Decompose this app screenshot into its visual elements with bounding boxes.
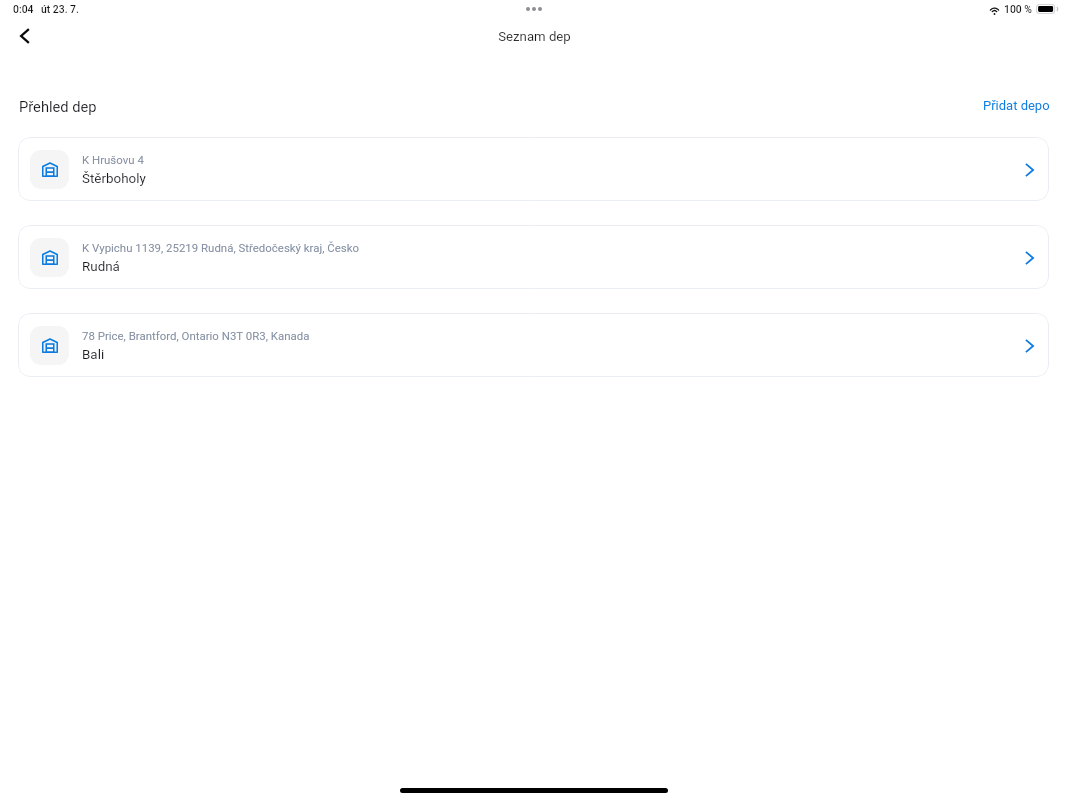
staticText: 100 % bbox=[1004, 3, 1032, 15]
button[interactable]: K Hrušovu 4 bbox=[18, 137, 1049, 201]
staticText: Rudná bbox=[82, 259, 120, 275]
staticText: Přehled dep bbox=[19, 98, 97, 115]
staticText: Přidat depo bbox=[983, 98, 1050, 113]
staticText: Seznam dep bbox=[498, 29, 571, 44]
button[interactable]: Přidat depo bbox=[975, 90, 1058, 121]
staticText: Štěrboholy bbox=[82, 171, 146, 187]
button[interactable]: Back bbox=[6, 21, 44, 50]
staticText: út 23. 7. bbox=[41, 3, 79, 15]
button[interactable]: K Vypichu 1139, 25219 Rudná, Středočeský… bbox=[18, 225, 1049, 289]
staticText: K Vypichu 1139, 25219 Rudná, Středočeský… bbox=[82, 241, 360, 254]
staticText: K Hrušovu 4 bbox=[82, 153, 144, 166]
staticText: 0:04 bbox=[13, 3, 34, 15]
staticText: 78 Price, Brantford, Ontario N3T 0R3, Ka… bbox=[82, 329, 310, 342]
staticText: Bali bbox=[82, 347, 105, 363]
button[interactable]: 78 Price, Brantford, Ontario N3T 0R3, Ka… bbox=[18, 313, 1049, 377]
